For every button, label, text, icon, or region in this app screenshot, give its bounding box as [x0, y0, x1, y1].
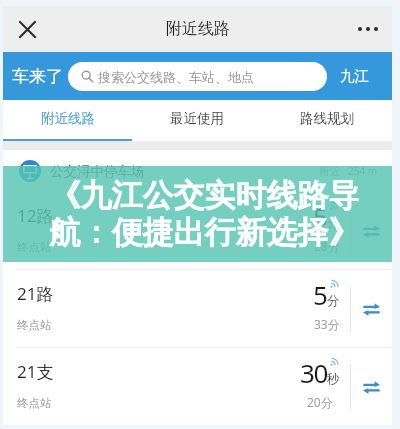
- staticText: 20分: [307, 394, 333, 410]
- staticText: 路线规划: [300, 110, 354, 127]
- button[interactable]: Close: [8, 10, 46, 48]
- button[interactable]: 公交浔中停车场: [3, 150, 392, 192]
- staticText: 分: [327, 215, 340, 231]
- staticText: 分: [327, 293, 340, 309]
- button[interactable]: More options: [349, 10, 387, 48]
- staticText: 终点站: [17, 396, 52, 410]
- staticText: 附近: [320, 165, 340, 178]
- staticText: 附近线路: [166, 19, 230, 39]
- staticText: 九江: [340, 67, 369, 85]
- staticText: 5: [313, 277, 327, 312]
- staticText: 30: [300, 355, 327, 390]
- staticText: 28分: [314, 238, 340, 254]
- staticText: 秒: [327, 371, 340, 387]
- button[interactable]: 附近线路: [3, 100, 132, 141]
- button[interactable]: 九江: [340, 67, 369, 85]
- button[interactable]: 搜索公交线路、车站、地点: [68, 62, 327, 91]
- staticText: 终点站: [17, 240, 52, 254]
- staticText: 终点站: [17, 318, 52, 332]
- button[interactable]: 21支: [3, 348, 392, 425]
- staticText: 搜索公交线路、车站、地点: [98, 69, 254, 85]
- staticText: 车来了: [12, 66, 63, 87]
- staticText: 12路: [17, 204, 54, 227]
- button[interactable]: 最近使用: [132, 100, 262, 141]
- staticText: 33分: [314, 316, 340, 332]
- staticText: 5: [313, 199, 327, 234]
- staticText: 最近使用: [170, 110, 224, 127]
- button[interactable]: 21路: [3, 270, 392, 348]
- staticText: 《九江公交实时线路导 航：便捷出行新选择》: [10, 176, 399, 252]
- staticText: 21路: [17, 282, 54, 305]
- button[interactable]: Swap direction: [356, 372, 386, 402]
- staticText: 21支: [17, 360, 54, 383]
- button[interactable]: 12路: [3, 192, 392, 270]
- staticText: 254 m: [348, 164, 378, 178]
- staticText: 公交浔中停车场: [50, 163, 145, 180]
- button[interactable]: Swap direction: [356, 216, 386, 246]
- button[interactable]: 路线规划: [262, 100, 392, 141]
- button[interactable]: Swap direction: [356, 294, 386, 324]
- staticText: 附近线路: [41, 110, 95, 127]
